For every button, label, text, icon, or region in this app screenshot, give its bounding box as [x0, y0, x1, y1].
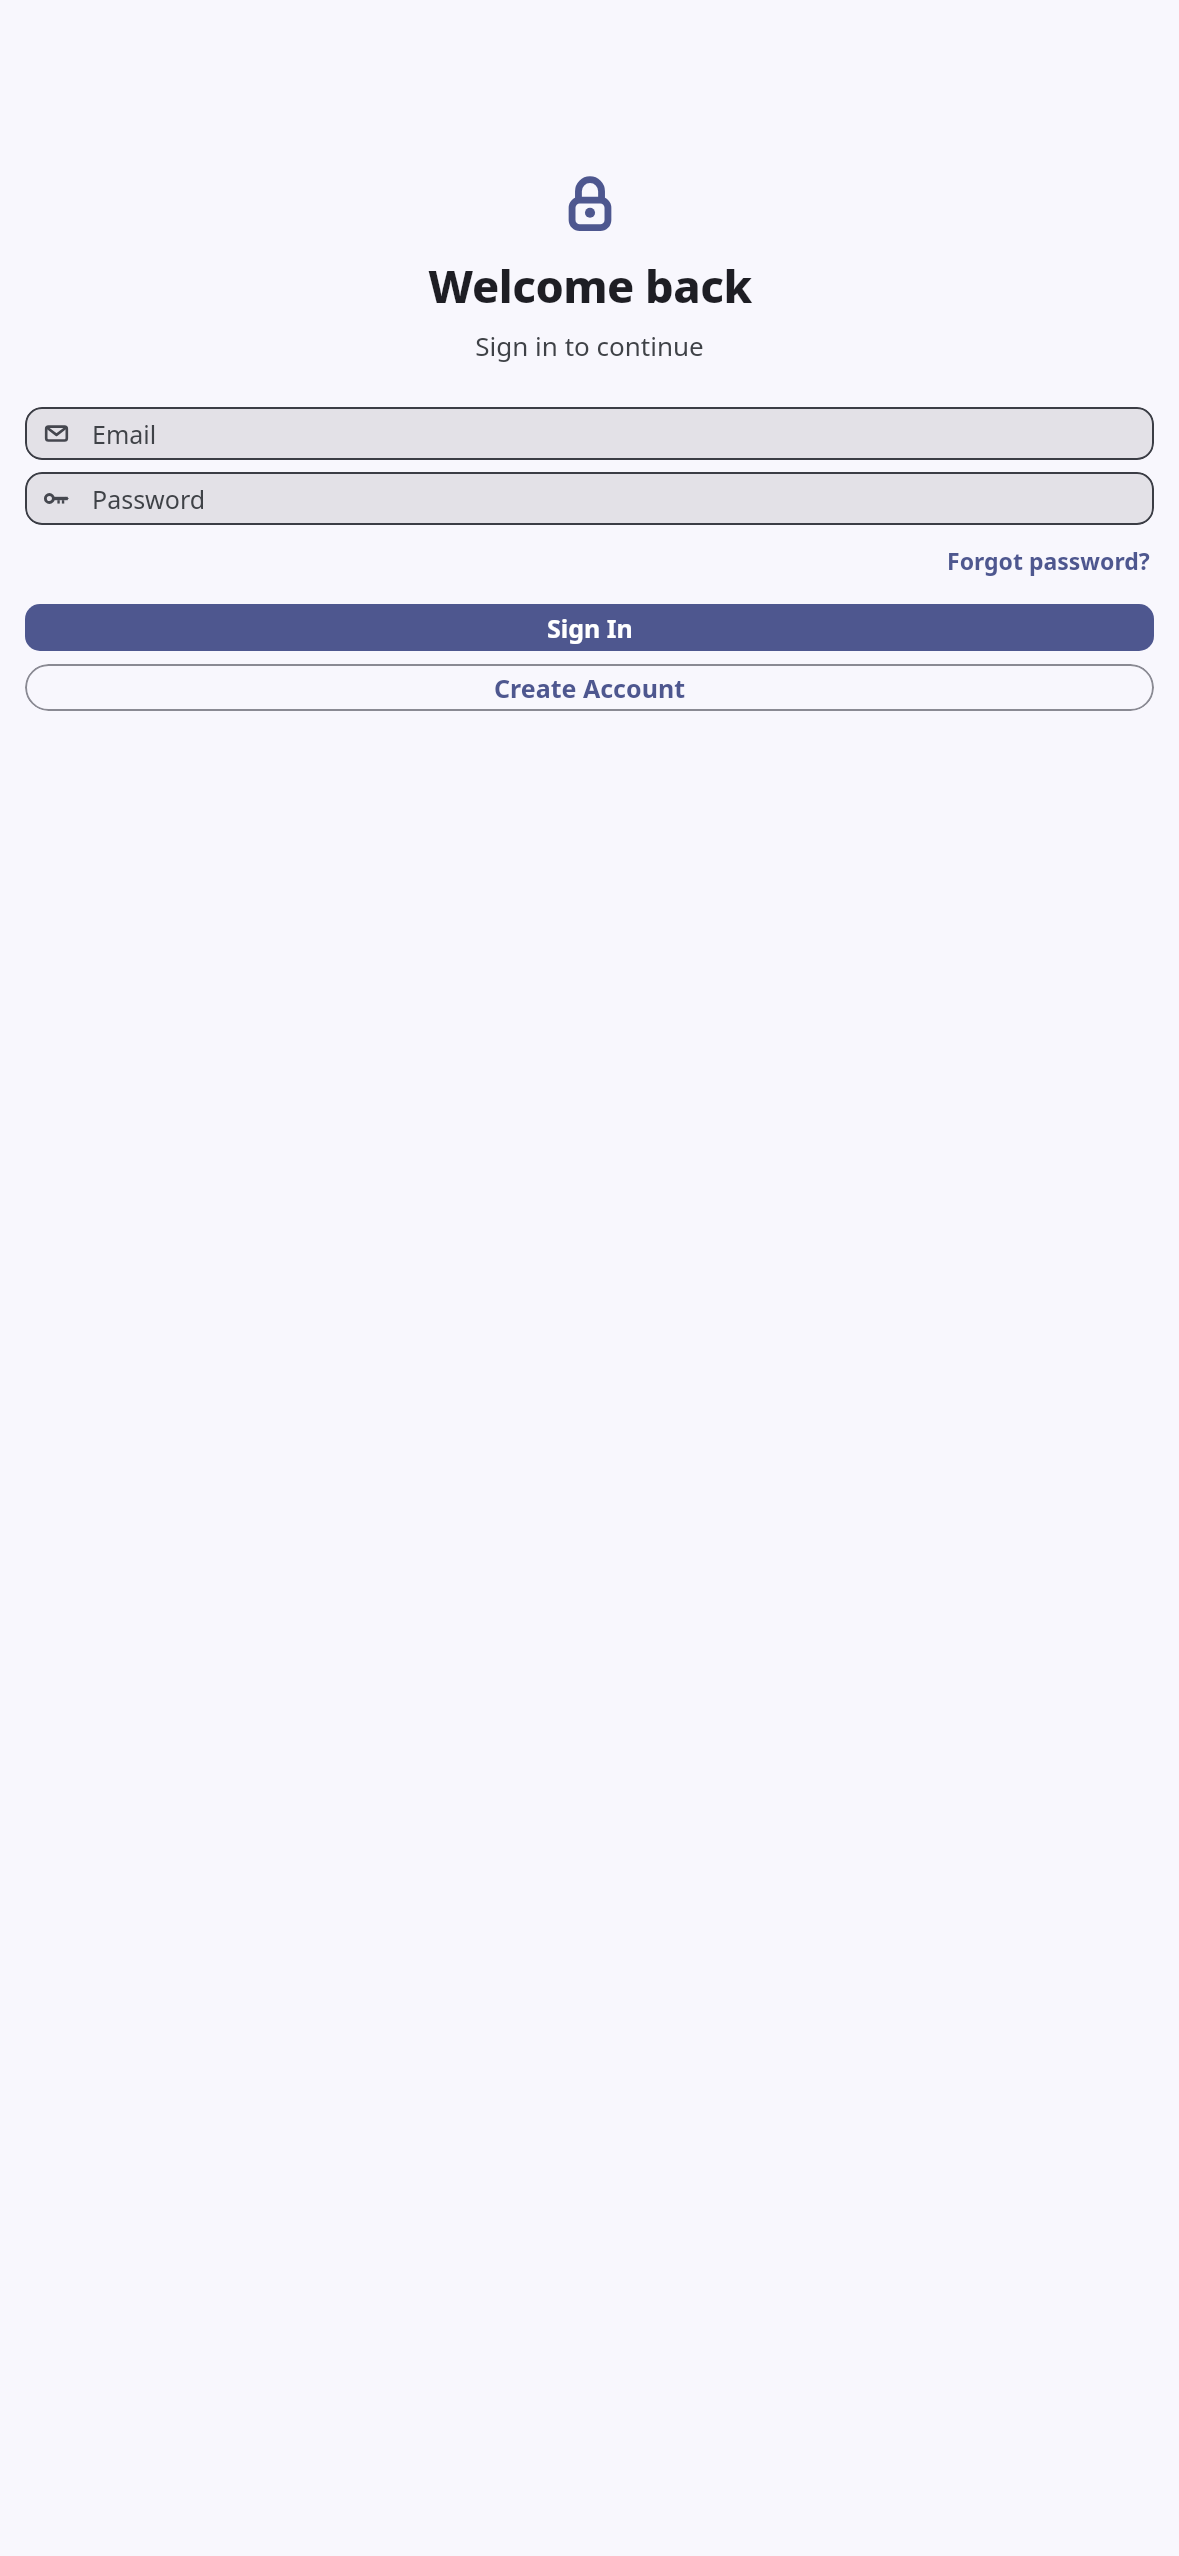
button[interactable]: Create Account — [25, 664, 1154, 711]
staticText: Sign In — [547, 611, 633, 645]
staticText: Create Account — [494, 671, 685, 705]
staticText: Email — [92, 417, 157, 451]
staticText: Welcome back — [428, 255, 752, 316]
button[interactable]: Password — [25, 472, 1154, 525]
staticText: Forgot password? — [947, 545, 1150, 576]
other: Lock — [568, 176, 612, 231]
button[interactable]: Sign In — [25, 604, 1154, 651]
staticText: Password — [92, 482, 206, 516]
staticText: Sign in to continue — [475, 328, 704, 363]
button[interactable]: Forgot password? — [943, 539, 1154, 582]
button[interactable]: Email — [25, 407, 1154, 460]
